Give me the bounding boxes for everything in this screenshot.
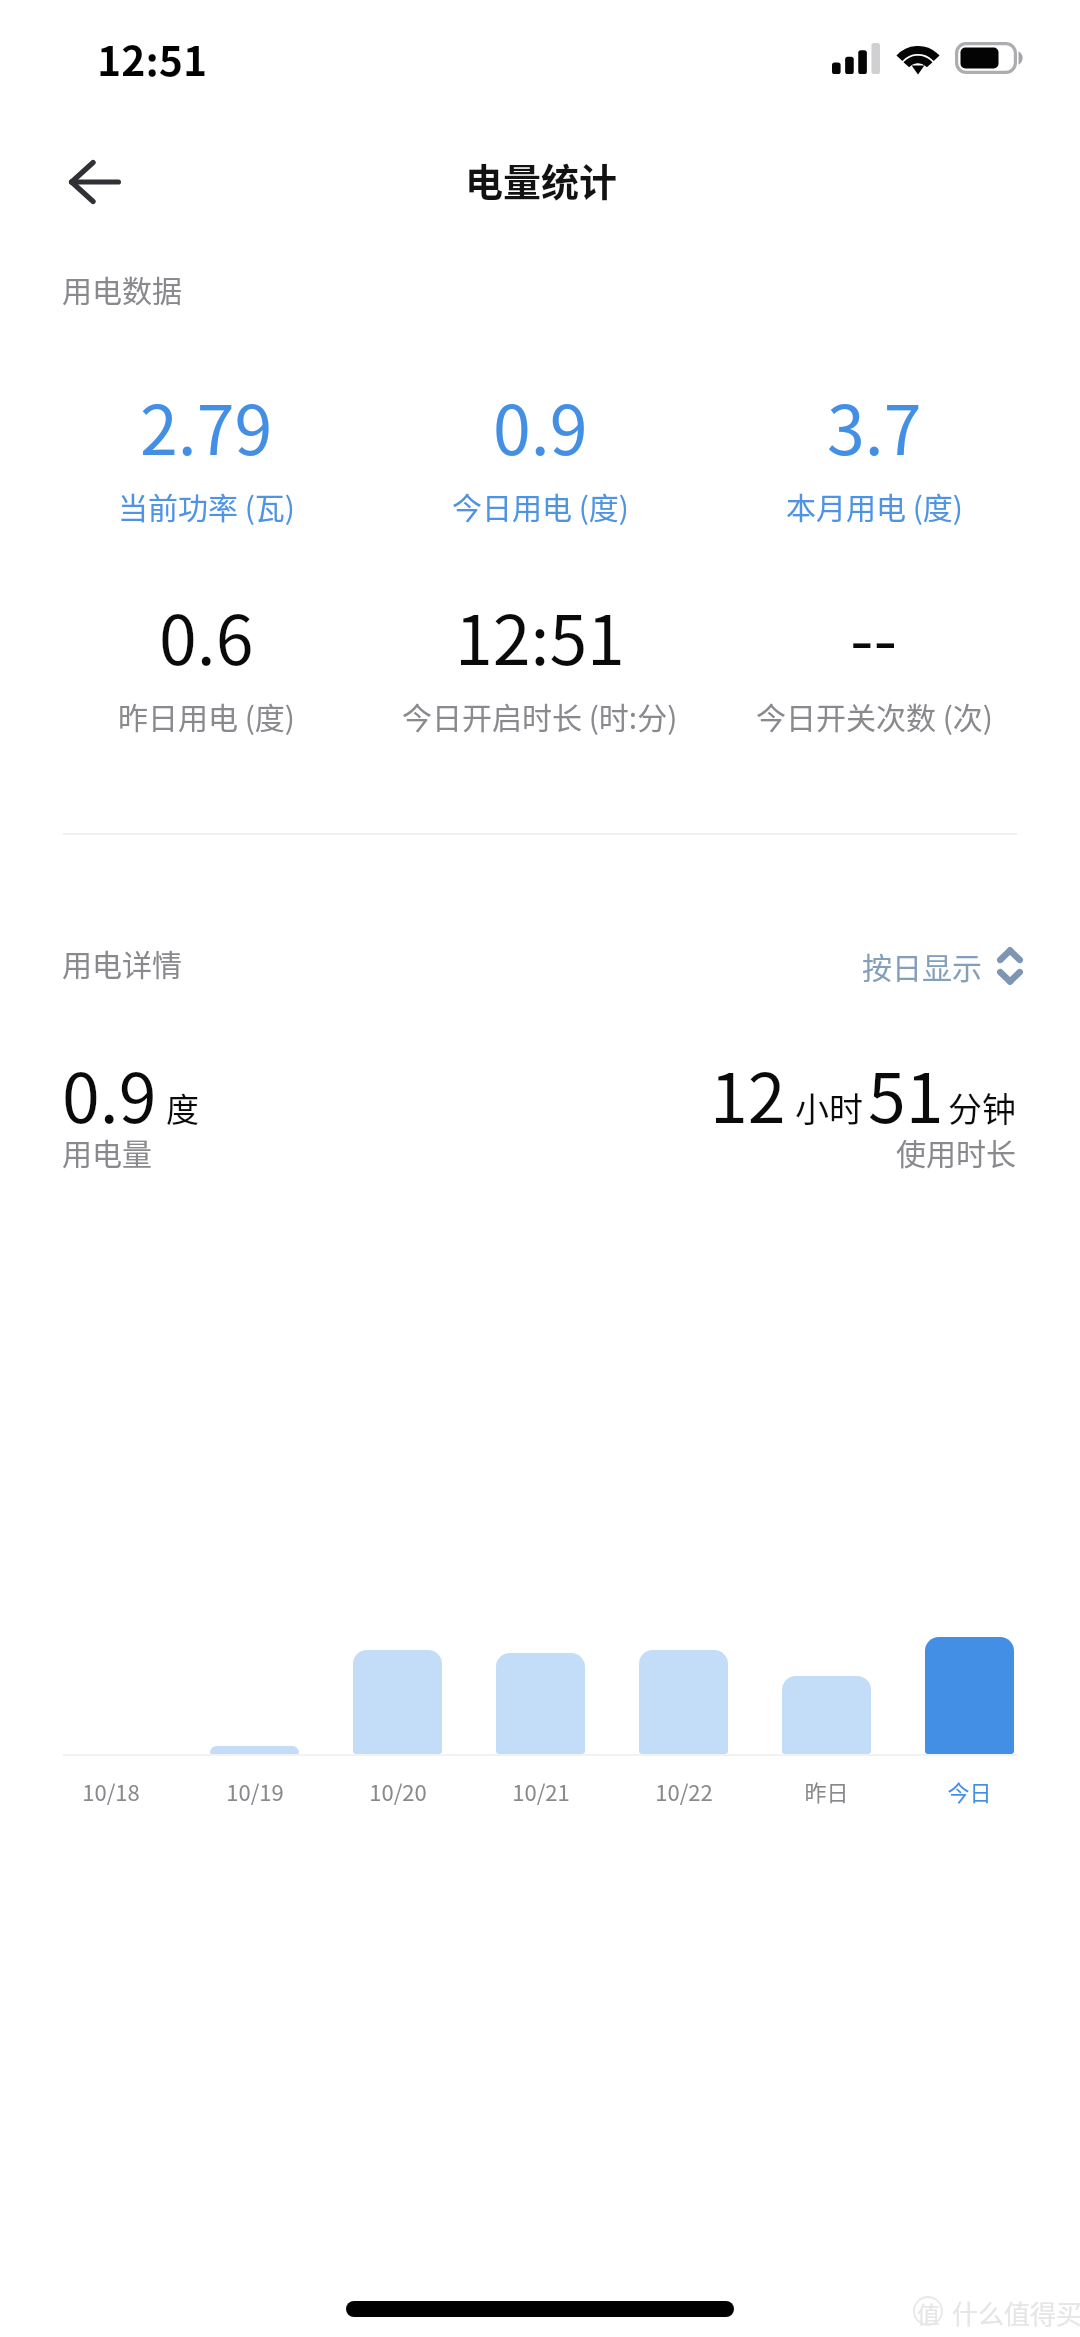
staticText: 10/18 bbox=[82, 1775, 140, 1807]
staticText: 什么值得买 bbox=[952, 2294, 1080, 2332]
staticText: 分钟 bbox=[948, 1083, 1016, 1132]
staticText: -- bbox=[850, 586, 898, 684]
staticText: 51 bbox=[868, 1044, 944, 1142]
button[interactable]: 0.6 bbox=[39, 586, 373, 737]
staticText: 10/22 bbox=[655, 1775, 713, 1807]
staticText: 按日显示 bbox=[862, 944, 982, 987]
button[interactable]: 2.79 bbox=[39, 376, 373, 527]
staticText: 用电量 bbox=[62, 1130, 152, 1173]
staticText: 当前功率 (瓦) bbox=[118, 484, 295, 527]
staticText: 0.6 bbox=[159, 586, 254, 684]
button[interactable]: 3.7 bbox=[707, 376, 1041, 527]
staticText: 10/21 bbox=[512, 1775, 570, 1807]
button[interactable]: 10/20 bbox=[326, 1624, 469, 1754]
staticText: 电量统计 bbox=[465, 152, 618, 207]
staticText: 12:51 bbox=[97, 28, 208, 87]
staticText: 度 bbox=[166, 1084, 199, 1132]
button[interactable]: Back bbox=[40, 127, 150, 237]
staticText: 10/20 bbox=[369, 1775, 427, 1807]
staticText: 使用时长 bbox=[896, 1130, 1016, 1173]
staticText: 今日开启时长 (时:分) bbox=[402, 694, 678, 737]
button[interactable]: 10/21 bbox=[469, 1624, 612, 1754]
button[interactable]: 昨日 bbox=[755, 1624, 898, 1754]
staticText: 今日 bbox=[947, 1775, 992, 1807]
staticText: 0.9 bbox=[493, 376, 588, 474]
staticText: 2.79 bbox=[140, 376, 273, 474]
button[interactable]: -- bbox=[707, 586, 1041, 737]
button[interactable]: 12:51 bbox=[373, 586, 707, 737]
button[interactable]: 10/19 bbox=[183, 1624, 326, 1754]
staticText: 今日开关次数 (次) bbox=[756, 694, 993, 737]
staticText: 3.7 bbox=[827, 376, 922, 474]
staticText: 用电数据 bbox=[62, 267, 182, 310]
staticText: 12 bbox=[710, 1044, 786, 1142]
button[interactable]: 0.9 bbox=[373, 376, 707, 527]
staticText: 本月用电 (度) bbox=[786, 484, 963, 527]
staticText: 0.9 bbox=[62, 1044, 157, 1142]
staticText: 昨日用电 (度) bbox=[118, 694, 295, 737]
staticText: 12:51 bbox=[455, 586, 625, 684]
button[interactable]: 今日 bbox=[898, 1624, 1041, 1754]
staticText: 10/19 bbox=[226, 1775, 284, 1807]
staticText: 值 bbox=[917, 2296, 940, 2326]
button[interactable]: 按日显示 bbox=[862, 944, 1023, 987]
staticText: 昨日 bbox=[804, 1775, 849, 1807]
button[interactable]: 10/22 bbox=[612, 1624, 755, 1754]
staticText: 今日用电 (度) bbox=[452, 484, 629, 527]
staticText: 小时 bbox=[795, 1083, 863, 1132]
staticText: 用电详情 bbox=[62, 941, 182, 984]
